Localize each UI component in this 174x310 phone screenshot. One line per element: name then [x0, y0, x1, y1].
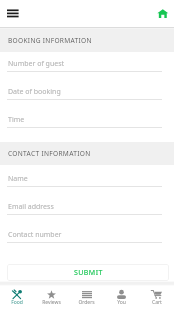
- button[interactable]: Email address: [0, 195, 174, 223]
- staticText: Reviews: [42, 299, 61, 306]
- button[interactable]: Open navigation menu: [0, 0, 26, 27]
- button[interactable]: Reviews: [34, 286, 69, 310]
- staticText: Date of booking: [8, 87, 61, 97]
- staticText: Name: [8, 174, 28, 184]
- staticText: Cart: [152, 299, 162, 306]
- staticText: Food: [11, 299, 23, 306]
- button[interactable]: Orders: [69, 286, 104, 310]
- staticText: Email address: [8, 202, 54, 212]
- button[interactable]: Time: [0, 108, 174, 136]
- button[interactable]: You: [104, 286, 139, 310]
- staticText: Contact number: [8, 230, 62, 240]
- button[interactable]: Cart: [139, 286, 174, 310]
- button[interactable]: Date of booking: [0, 80, 174, 108]
- staticText: SUBMIT: [74, 268, 103, 278]
- staticText: CONTACT INFORMATION: [8, 149, 91, 158]
- staticText: You: [117, 299, 126, 306]
- button[interactable]: Home: [150, 0, 174, 27]
- staticText: BOOKING INFORMATION: [8, 36, 92, 45]
- staticText: Time: [8, 115, 25, 125]
- button[interactable]: SUBMIT: [7, 264, 169, 281]
- staticText: Orders: [78, 299, 95, 306]
- staticText: Number of guest: [8, 59, 65, 69]
- button[interactable]: Contact number: [0, 223, 174, 251]
- button[interactable]: Food: [0, 286, 34, 310]
- button[interactable]: Name: [0, 167, 174, 195]
- button[interactable]: Number of guest: [0, 52, 174, 80]
